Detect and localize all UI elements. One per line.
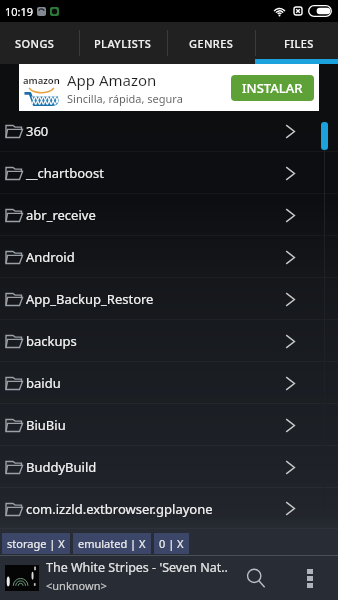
button[interactable]: abr_receive bbox=[0, 194, 338, 236]
staticText: <unknown> bbox=[46, 578, 107, 593]
staticText: storage | X bbox=[7, 536, 65, 551]
button[interactable]: storage | X bbox=[2, 533, 70, 554]
staticText: 360 bbox=[26, 122, 285, 140]
button[interactable]: BuddyBuild bbox=[0, 446, 338, 488]
staticText: INSTALAR bbox=[242, 79, 303, 97]
button[interactable]: SONGS bbox=[0, 22, 79, 64]
staticText: com.izzld.extbrowser.gplayone bbox=[26, 500, 285, 518]
button[interactable]: App_Backup_Restore bbox=[0, 278, 338, 320]
button[interactable]: __chartboost bbox=[0, 152, 338, 194]
staticText: BuddyBuild bbox=[26, 458, 285, 476]
button[interactable]: Search bbox=[236, 556, 276, 600]
staticText: Sincilla, rápida, segura bbox=[67, 91, 183, 106]
button[interactable]: BiuBiu bbox=[0, 404, 338, 446]
staticText: The White Stripes - 'Seven Nat.. bbox=[46, 559, 228, 576]
button[interactable]: com.izzld.extbrowser.gplayone bbox=[0, 488, 338, 529]
button[interactable]: PLAYLISTS bbox=[79, 22, 167, 64]
button[interactable]: 0 | X bbox=[154, 533, 189, 554]
staticText: emulated | X bbox=[78, 536, 146, 551]
staticText: FILES bbox=[284, 36, 314, 51]
button[interactable]: amazon bbox=[19, 64, 319, 111]
staticText: backups bbox=[26, 332, 285, 350]
staticText: PLAYLISTS bbox=[94, 36, 152, 51]
button[interactable]: FILES bbox=[255, 22, 338, 64]
button[interactable]: INSTALAR bbox=[231, 75, 314, 101]
button[interactable]: emulated | X bbox=[73, 533, 151, 554]
button[interactable]: 360 bbox=[0, 110, 338, 152]
staticText: 0 | X bbox=[159, 536, 184, 551]
staticText: baidu bbox=[26, 374, 285, 392]
staticText: BiuBiu bbox=[26, 416, 285, 434]
staticText: SONGS bbox=[15, 36, 55, 51]
staticText: 10:19 bbox=[5, 4, 34, 19]
button[interactable]: Android bbox=[0, 236, 338, 278]
staticText: __chartboost bbox=[26, 164, 285, 182]
staticText: Android bbox=[26, 248, 285, 266]
staticText: App_Backup_Restore bbox=[26, 290, 285, 308]
staticText: abr_receive bbox=[26, 206, 285, 224]
button[interactable]: baidu bbox=[0, 362, 338, 404]
button[interactable]: backups bbox=[0, 320, 338, 362]
button[interactable]: More options bbox=[293, 556, 327, 600]
staticText: amazon bbox=[23, 74, 60, 87]
staticText: GENRES bbox=[189, 36, 234, 51]
staticText: App Amazon bbox=[67, 70, 157, 90]
button[interactable]: GENRES bbox=[167, 22, 255, 64]
